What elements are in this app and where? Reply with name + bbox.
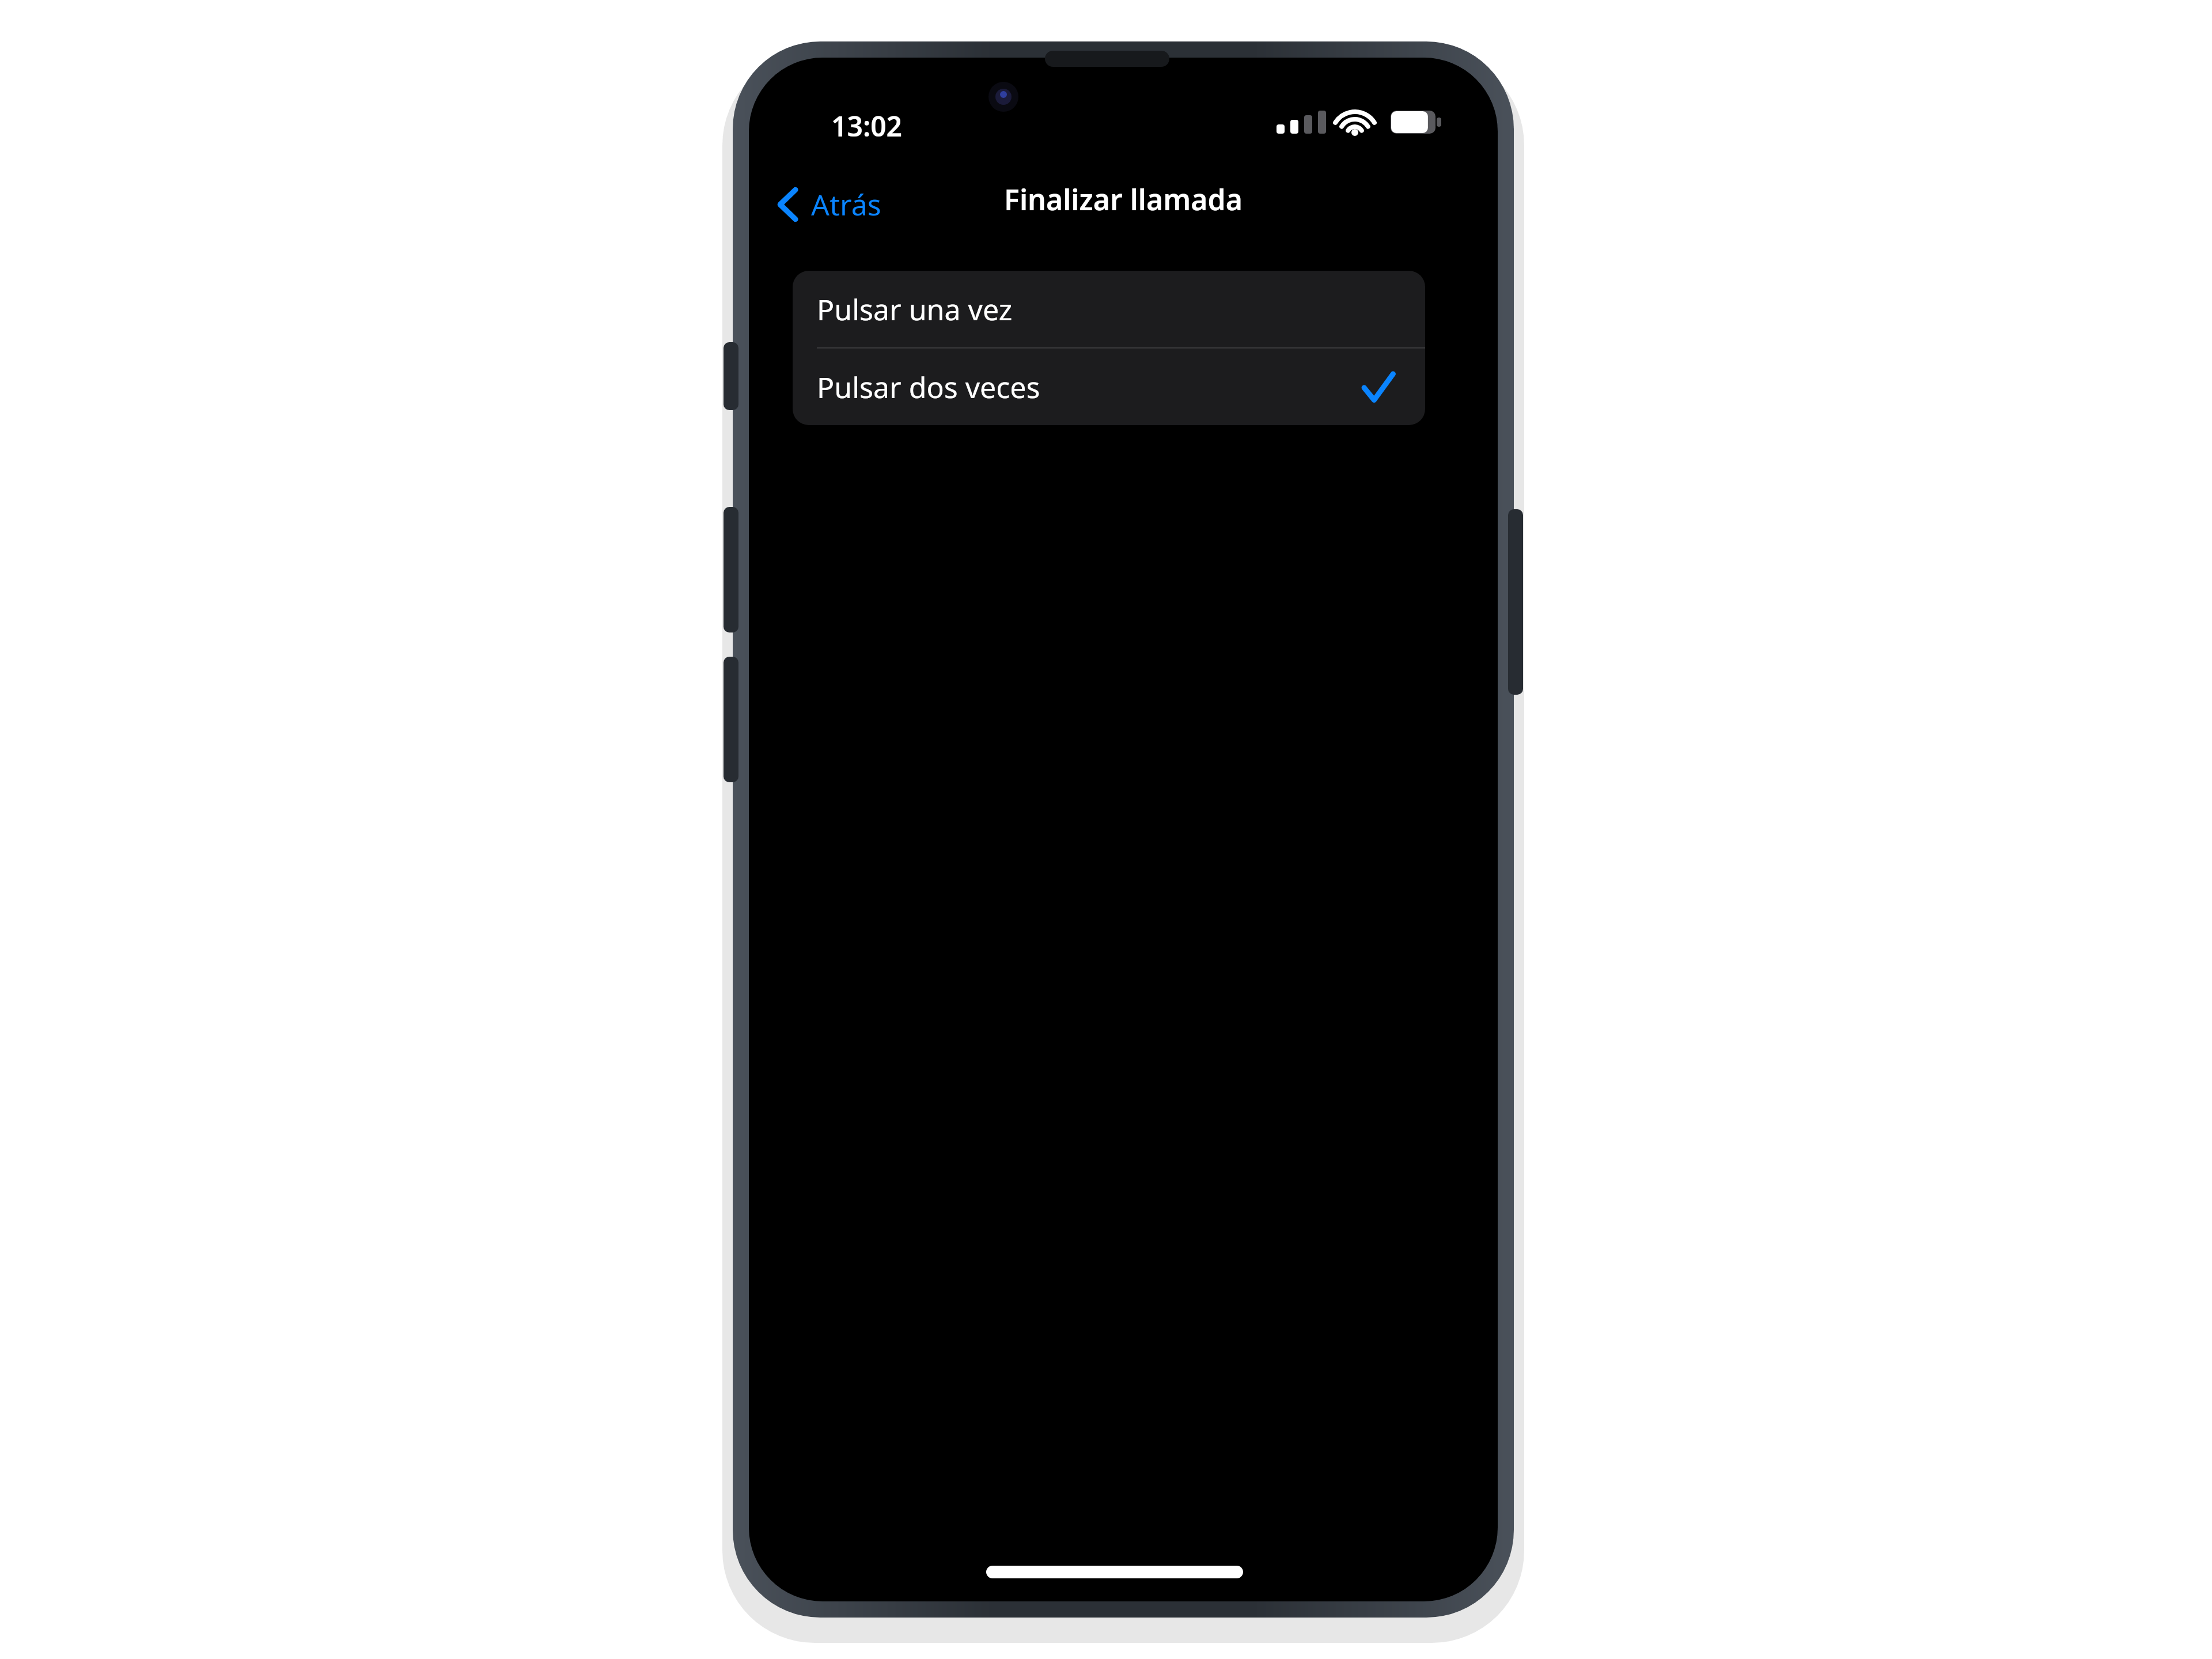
button[interactable]: Pulsar dos veces bbox=[793, 349, 1425, 425]
staticText: Finalizar llamada bbox=[1004, 180, 1243, 219]
staticText: Pulsar una vez bbox=[817, 290, 1013, 329]
staticText: Pulsar dos veces bbox=[817, 368, 1040, 407]
other: Selected bbox=[1363, 372, 1394, 402]
staticText: 13:02 bbox=[831, 107, 903, 145]
staticText: Atrás bbox=[811, 185, 881, 224]
button[interactable]: Pulsar una vez bbox=[793, 271, 1425, 347]
button[interactable]: Atrás bbox=[770, 173, 889, 236]
